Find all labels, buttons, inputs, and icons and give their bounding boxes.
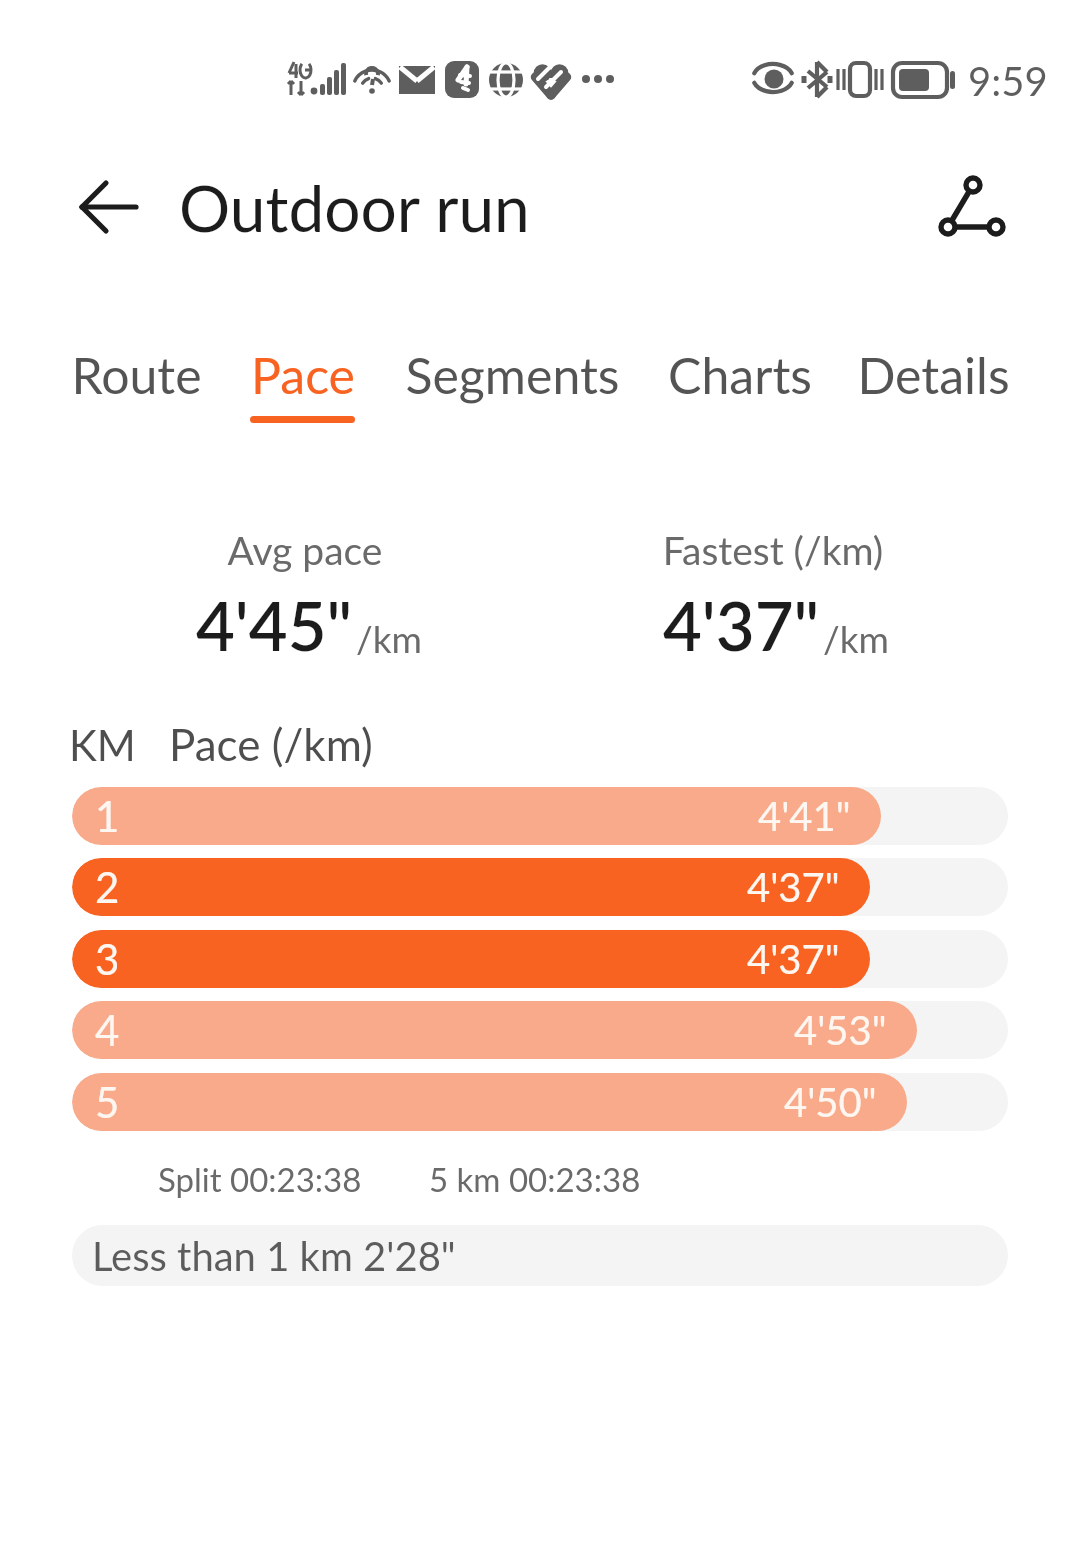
staticText: 9:59 [968,57,1048,105]
staticText: 4'37" [663,585,820,665]
staticText: 4'50" [784,1078,877,1126]
staticText: Details [857,345,1010,405]
staticText: 4'37" [747,863,840,911]
button[interactable]: Back [62,172,140,246]
button[interactable]: Details [845,345,1022,437]
staticText: Less than 1 km 2'28" [92,1232,456,1280]
staticText: /km [356,616,422,660]
staticText: KM [69,720,136,770]
staticText: 1 [95,791,120,841]
button[interactable]: 4 [72,1001,1008,1059]
staticText: Route [71,345,202,405]
staticText: 5 [95,1077,120,1127]
button[interactable]: Charts [655,345,824,437]
staticText: 4'53" [794,1006,887,1054]
button[interactable]: 5 [72,1073,1008,1131]
staticText: 5 km 00:23:38 [429,1159,641,1199]
staticText: 2 [95,862,120,912]
button[interactable]: Less than 1 km 2'28" [72,1225,1008,1286]
staticText: 4'41" [758,792,851,840]
staticText: Outdoor run [179,169,530,246]
staticText: 3 [95,934,120,984]
staticText: Segments [405,345,620,405]
button[interactable]: Route [59,345,213,437]
staticText: Split 00:23:38 [158,1159,362,1199]
button[interactable]: Share [930,164,1022,250]
button[interactable]: Pace [236,345,369,437]
staticText: 4'37" [747,935,840,983]
button[interactable]: 3 [72,930,1008,988]
staticText: Pace [251,345,355,405]
staticText: 4'45" [196,585,353,665]
staticText: Charts [668,345,812,405]
button[interactable]: 1 [72,787,1008,845]
staticText: Avg pace [100,527,510,577]
staticText: Pace (/km) [169,718,373,771]
staticText: Fastest (/km) [568,527,978,577]
staticText: 4 [95,1005,120,1055]
button[interactable]: 2 [72,858,1008,916]
button[interactable]: Segments [387,345,637,437]
staticText: /km [823,616,889,660]
